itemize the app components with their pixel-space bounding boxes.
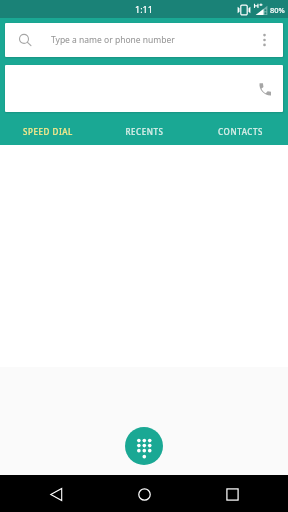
staticText: Type a name or phone number bbox=[51, 34, 175, 46]
button[interactable]: RECENTS bbox=[96, 124, 192, 138]
button[interactable]: Recents bbox=[210, 484, 254, 505]
button[interactable]: More options bbox=[246, 23, 283, 57]
button[interactable]: CONTACTS bbox=[192, 124, 288, 138]
button[interactable]: Dialpad bbox=[125, 427, 163, 465]
staticText: CONTACTS bbox=[218, 126, 263, 137]
button[interactable]: Call bbox=[5, 65, 283, 112]
button[interactable]: Home bbox=[122, 484, 166, 505]
button[interactable]: Type a name or phone number bbox=[5, 23, 283, 57]
staticText: 80% bbox=[270, 5, 285, 15]
button[interactable]: SPEED DIAL bbox=[0, 124, 96, 138]
button[interactable]: Call bbox=[254, 79, 274, 99]
staticText: RECENTS bbox=[125, 126, 164, 137]
staticText: SPEED DIAL bbox=[23, 126, 73, 137]
button[interactable]: Back bbox=[34, 484, 78, 505]
staticText: 1:11 bbox=[135, 3, 153, 15]
